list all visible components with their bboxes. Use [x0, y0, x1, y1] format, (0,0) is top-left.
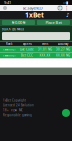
button[interactable]: Tabs: [58, 6, 62, 10]
staticText: Place Bet: [45, 20, 61, 25]
button[interactable]: Sound: [66, 12, 69, 18]
staticText: Wins: [42, 42, 48, 46]
staticText: Rank: [6, 42, 12, 46]
staticText: Bet CCC: [21, 54, 33, 57]
staticText: 9:41: [4, 0, 11, 5]
staticText: Licensed 24 Evolution: [3, 103, 34, 107]
staticText: 31.01 NG: [38, 48, 52, 51]
button[interactable]: ₦ 0.00 ₦: [2, 20, 35, 25]
staticText: MC: [19, 108, 23, 112]
staticText: ₦ 0.00 ₦: [12, 20, 25, 25]
button[interactable]: Menu: [64, 5, 69, 11]
button[interactable]: Place Bet: [37, 20, 70, 25]
staticText: ▮: [66, 0, 68, 5]
staticText: VISA: [11, 108, 17, 112]
button[interactable]: 1xWinner: [0, 52, 72, 58]
staticText: Experts: [22, 42, 31, 46]
button[interactable]: Live chat: [62, 109, 70, 117]
staticText: 1xWinner: [2, 54, 15, 57]
staticText: 1xBet: [25, 11, 44, 19]
staticText: 30.27 NG: [56, 48, 70, 51]
button[interactable]: Site settings: [3, 6, 7, 10]
staticText: LTE: [63, 1, 66, 4]
staticText: XXX.XX: [39, 54, 50, 57]
staticText: 1xBet Copyright: [3, 99, 26, 102]
staticText: 1: [59, 6, 61, 10]
button[interactable]: 1xWinner: [0, 46, 72, 52]
staticText: XX.XX NG: [56, 54, 70, 57]
staticText: ⋮: [64, 5, 69, 11]
staticText: 18+: [3, 108, 9, 112]
staticText: 1xWinner: [2, 48, 15, 51]
staticText: Responsible gaming: [3, 113, 32, 117]
staticText: ♪: [66, 12, 69, 18]
staticText: ac.sayenCO: [22, 5, 42, 11]
staticText: Live Code: [20, 48, 34, 51]
staticText: BLOCK LEG MULTI: [2, 27, 24, 31]
staticText: Accuracy: [58, 42, 68, 46]
